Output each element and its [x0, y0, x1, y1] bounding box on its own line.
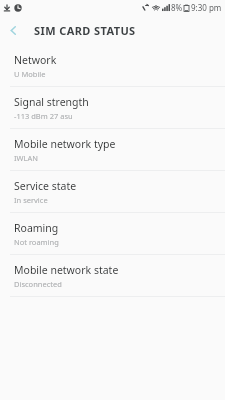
- button[interactable]: Signal strength: [0, 87, 225, 128]
- button[interactable]: Service state: [0, 171, 225, 212]
- staticText: 9:30 pm: [191, 2, 222, 13]
- staticText: Network: [14, 53, 57, 67]
- button[interactable]: Roaming: [0, 213, 225, 254]
- staticText: SIM CARD STATUS: [34, 23, 136, 38]
- staticText: U Mobile: [14, 69, 46, 79]
- button[interactable]: Back: [0, 17, 26, 43]
- staticText: Roaming: [14, 221, 59, 235]
- staticText: In service: [14, 195, 48, 205]
- staticText: Disconnected: [14, 279, 62, 289]
- button[interactable]: Mobile network state: [0, 255, 225, 296]
- button[interactable]: Network: [0, 45, 225, 86]
- staticText: 8%: [171, 2, 183, 13]
- button[interactable]: Mobile network type: [0, 129, 225, 170]
- staticText: Mobile network state: [14, 263, 119, 277]
- staticText: IWLAN: [14, 153, 38, 163]
- staticText: -113 dBm 27 asu: [14, 111, 73, 121]
- staticText: Signal strength: [14, 95, 89, 109]
- staticText: Mobile network type: [14, 137, 116, 151]
- staticText: Service state: [14, 179, 77, 193]
- staticText: Not roaming: [14, 237, 59, 247]
